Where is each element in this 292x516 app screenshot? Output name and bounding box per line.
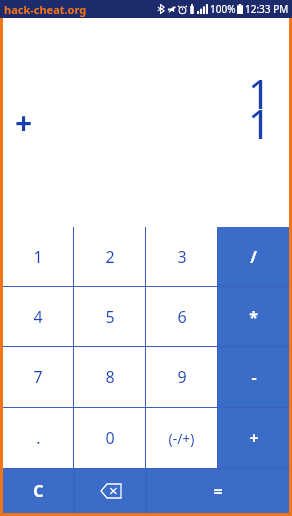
button[interactable]: 0 bbox=[74, 408, 145, 468]
button[interactable]: 2 bbox=[74, 227, 145, 286]
staticText: 0 bbox=[105, 427, 115, 449]
button[interactable]: - bbox=[218, 347, 289, 407]
button[interactable]: 9 bbox=[146, 347, 217, 407]
staticText: 4 bbox=[33, 306, 43, 328]
staticText: hack-cheat.org bbox=[4, 2, 87, 17]
button[interactable]: 5 bbox=[74, 287, 145, 346]
button[interactable]: 6 bbox=[146, 287, 217, 346]
staticText: - bbox=[251, 366, 257, 388]
staticText: + bbox=[249, 427, 259, 449]
button[interactable]: 1 bbox=[3, 227, 73, 286]
staticText: * bbox=[249, 306, 258, 328]
staticText: 1 bbox=[248, 96, 271, 150]
staticText: 9 bbox=[177, 366, 187, 388]
staticText: . bbox=[36, 427, 41, 449]
staticText: C bbox=[33, 480, 44, 502]
staticText: + bbox=[15, 102, 33, 143]
staticText: / bbox=[250, 246, 257, 268]
staticText: 6 bbox=[177, 306, 187, 328]
button[interactable]: / bbox=[218, 227, 289, 286]
staticText: 1 bbox=[33, 246, 43, 268]
button[interactable]: C bbox=[3, 469, 74, 513]
button[interactable]: (-/+) bbox=[146, 408, 217, 468]
staticText: 1 bbox=[248, 66, 271, 120]
staticText: 100% bbox=[210, 2, 236, 16]
button[interactable]: . bbox=[3, 408, 73, 468]
staticText: 8 bbox=[105, 366, 115, 388]
staticText: = bbox=[213, 480, 223, 502]
staticText: 12:33 PM bbox=[245, 2, 289, 16]
button[interactable]: 8 bbox=[74, 347, 145, 407]
button[interactable]: * bbox=[218, 287, 289, 346]
staticText: 5 bbox=[105, 306, 115, 328]
staticText: 7 bbox=[33, 366, 43, 388]
button[interactable]: Backspace bbox=[75, 469, 146, 513]
button[interactable]: 7 bbox=[3, 347, 73, 407]
button[interactable]: = bbox=[147, 469, 289, 513]
staticText: (-/+) bbox=[168, 429, 195, 448]
button[interactable]: 3 bbox=[146, 227, 217, 286]
staticText: 3 bbox=[177, 246, 187, 268]
button[interactable]: 4 bbox=[3, 287, 73, 346]
button[interactable]: + bbox=[218, 408, 289, 468]
staticText: 2 bbox=[105, 246, 115, 268]
